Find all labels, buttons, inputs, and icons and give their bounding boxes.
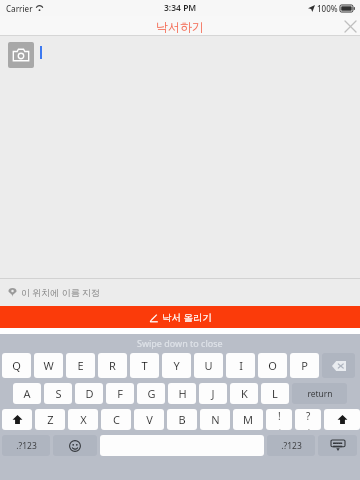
staticText: I bbox=[239, 358, 243, 373]
button[interactable]: Y bbox=[162, 353, 191, 378]
staticText: P bbox=[301, 358, 308, 373]
staticText: J bbox=[211, 386, 215, 401]
staticText: N bbox=[211, 412, 220, 427]
staticText: W bbox=[43, 358, 54, 373]
button[interactable]: H bbox=[168, 383, 196, 404]
button[interactable]: Hide keyboard bbox=[318, 435, 357, 456]
staticText: L bbox=[272, 386, 278, 401]
staticText: return bbox=[307, 388, 333, 400]
staticText: 낙서 올리기 bbox=[162, 311, 212, 324]
button[interactable]: E bbox=[66, 353, 95, 378]
staticText: V bbox=[146, 412, 153, 427]
button[interactable]: C bbox=[101, 409, 131, 430]
staticText: 낙서하기 bbox=[156, 19, 204, 34]
staticText: E bbox=[77, 358, 84, 373]
button[interactable]: W bbox=[34, 353, 63, 378]
button[interactable]: M bbox=[233, 409, 263, 430]
staticText: B bbox=[178, 412, 186, 427]
button[interactable]: J bbox=[199, 383, 227, 404]
button[interactable]: ! bbox=[266, 409, 292, 430]
button[interactable]: X bbox=[68, 409, 98, 430]
button[interactable]: Add photo bbox=[8, 42, 34, 68]
button[interactable]: U bbox=[194, 353, 223, 378]
staticText: Q bbox=[12, 358, 21, 373]
staticText: F bbox=[117, 386, 123, 401]
button[interactable]: Close bbox=[340, 16, 360, 36]
staticText: C bbox=[113, 412, 120, 427]
button[interactable]: Backspace bbox=[322, 353, 355, 378]
button[interactable]: A bbox=[13, 383, 41, 404]
button[interactable]: 낙서 올리기 bbox=[0, 306, 360, 328]
button[interactable]: N bbox=[200, 409, 230, 430]
staticText: .?123 bbox=[16, 440, 37, 452]
button[interactable]: Q bbox=[2, 353, 31, 378]
button[interactable]: B bbox=[167, 409, 197, 430]
staticText: H bbox=[178, 386, 187, 401]
staticText: U bbox=[204, 358, 213, 373]
staticText: 이 위치에 이름 지정 bbox=[21, 286, 101, 298]
staticText: Y bbox=[173, 358, 180, 373]
button[interactable]: return bbox=[292, 383, 347, 404]
staticText: T bbox=[141, 358, 148, 373]
button[interactable]: F bbox=[106, 383, 134, 404]
staticText: K bbox=[241, 386, 248, 401]
staticText: R bbox=[109, 358, 116, 373]
staticText: ? bbox=[306, 409, 311, 423]
button[interactable]: .?123 bbox=[267, 435, 315, 456]
button[interactable]: S bbox=[44, 383, 72, 404]
button[interactable]: 이 위치에 이름 지정 bbox=[0, 278, 360, 306]
button[interactable]: K bbox=[230, 383, 258, 404]
staticText: 3:34 PM bbox=[164, 2, 197, 14]
button[interactable]: Shift bbox=[2, 409, 32, 430]
staticText: G bbox=[147, 386, 156, 401]
button[interactable]: T bbox=[130, 353, 159, 378]
button[interactable]: Z bbox=[35, 409, 65, 430]
staticText: . bbox=[308, 423, 310, 430]
button[interactable]: O bbox=[258, 353, 287, 378]
button[interactable]: R bbox=[98, 353, 127, 378]
button[interactable]: Emoji bbox=[53, 435, 97, 456]
staticText: ! bbox=[278, 409, 281, 423]
staticText: O bbox=[268, 358, 277, 373]
button[interactable]: P bbox=[290, 353, 319, 378]
staticText: 100% bbox=[317, 3, 338, 14]
button[interactable]: V bbox=[134, 409, 164, 430]
button[interactable]: .?123 bbox=[2, 435, 50, 456]
staticText: Z bbox=[47, 412, 54, 427]
staticText: D bbox=[85, 386, 94, 401]
button[interactable]: D bbox=[75, 383, 103, 404]
staticText: .?123 bbox=[281, 440, 302, 452]
button[interactable]: ? bbox=[295, 409, 321, 430]
staticText: M bbox=[243, 412, 253, 427]
staticText: A bbox=[23, 386, 31, 401]
staticText: S bbox=[55, 386, 62, 401]
staticText: X bbox=[80, 412, 87, 427]
button[interactable]: L bbox=[261, 383, 289, 404]
staticText: Swipe down to close bbox=[137, 337, 223, 349]
button[interactable]: G bbox=[137, 383, 165, 404]
staticText: , bbox=[279, 423, 281, 430]
staticText: Carrier bbox=[6, 3, 33, 14]
button[interactable]: I bbox=[226, 353, 255, 378]
button[interactable]: Shift bbox=[324, 409, 360, 430]
